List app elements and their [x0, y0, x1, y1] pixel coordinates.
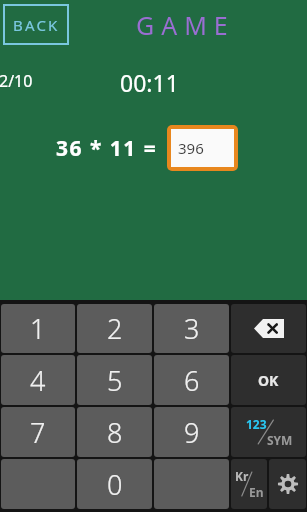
- button[interactable]: Backspace: [231, 304, 306, 353]
- staticText: 9: [184, 414, 200, 451]
- staticText: 6: [184, 362, 200, 399]
- staticText: 00:11: [120, 67, 179, 98]
- button[interactable]: 396: [171, 129, 234, 167]
- button[interactable]: 4: [1, 355, 75, 405]
- button[interactable]: BACK: [3, 4, 69, 45]
- staticText: 8: [107, 414, 123, 451]
- staticText: En: [249, 484, 264, 500]
- button[interactable]: 8: [77, 407, 152, 457]
- staticText: 2: [107, 310, 123, 347]
- staticText: Kr: [235, 468, 249, 484]
- button[interactable]: OK: [231, 355, 306, 405]
- staticText: 4: [30, 362, 46, 399]
- button[interactable]: 0: [77, 459, 152, 509]
- button[interactable]: Settings: [269, 459, 306, 509]
- button[interactable]: 7: [1, 407, 75, 457]
- staticText: 2/10: [0, 70, 33, 92]
- staticText: OK: [258, 371, 279, 390]
- staticText: 0: [107, 466, 123, 503]
- staticText: 123: [246, 416, 267, 432]
- staticText: BACK: [13, 15, 60, 35]
- button[interactable]: 3: [154, 304, 229, 353]
- button[interactable]: 5: [77, 355, 152, 405]
- staticText: 3: [184, 310, 200, 347]
- staticText: 1: [30, 310, 46, 347]
- staticText: 7: [30, 414, 46, 451]
- button[interactable]: Kr: [231, 459, 267, 509]
- button[interactable]: 2: [77, 304, 152, 353]
- button[interactable]: 9: [154, 407, 229, 457]
- button[interactable]: 1: [1, 304, 75, 353]
- staticText: 5: [107, 362, 123, 399]
- button[interactable]: 6: [154, 355, 229, 405]
- staticText: 36 * 11 =: [56, 134, 158, 163]
- staticText: SYM: [267, 432, 293, 448]
- staticText: GAME: [136, 8, 235, 42]
- staticText: 396: [178, 138, 204, 158]
- button[interactable]: 123: [231, 407, 306, 457]
